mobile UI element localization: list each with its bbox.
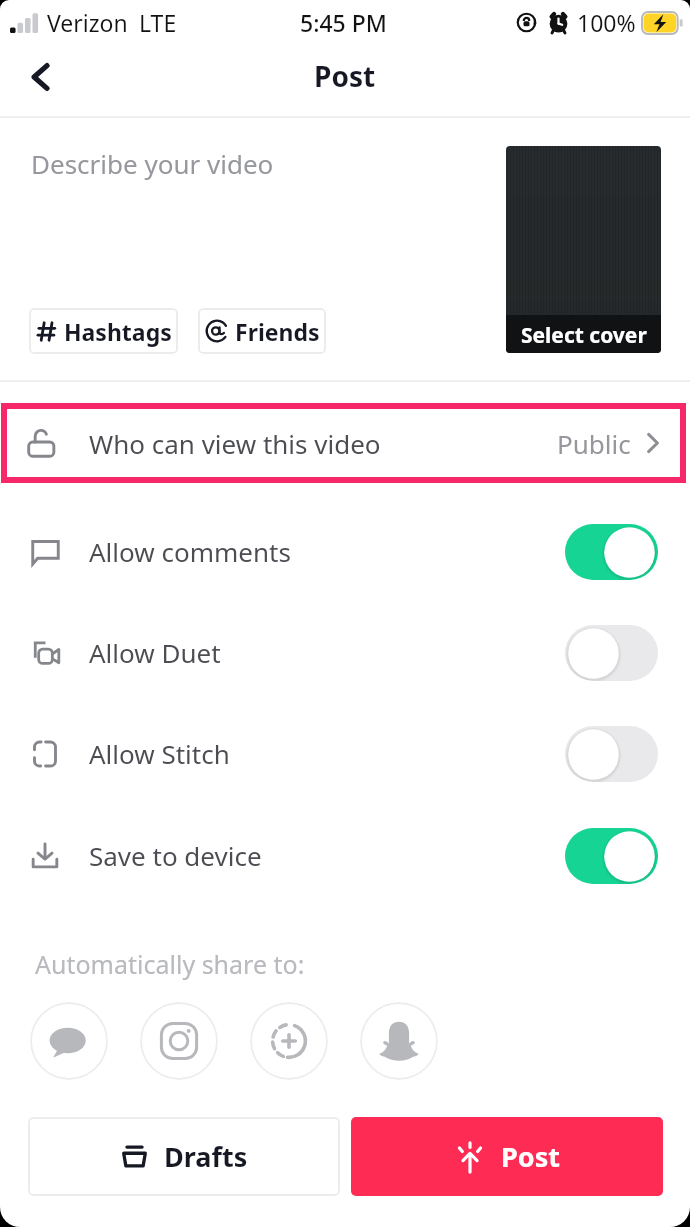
- staticText: 100%: [577, 7, 636, 38]
- button[interactable]: Allow Duet: [565, 625, 658, 681]
- button[interactable]: Who can view this video: [1, 403, 686, 483]
- button[interactable]: Save to device: [565, 828, 658, 884]
- button[interactable]: Select cover: [506, 146, 661, 353]
- button[interactable]: Allow comments: [0, 501, 690, 602]
- staticText: Verizon: [47, 7, 128, 38]
- button[interactable]: Share to Instagram: [140, 1002, 218, 1080]
- staticText: Post: [314, 57, 376, 95]
- staticText: Select cover: [521, 321, 647, 350]
- staticText: Allow comments: [89, 534, 291, 569]
- staticText: Friends: [235, 316, 320, 347]
- staticText: Automatically share to:: [35, 947, 305, 981]
- button[interactable]: Share to messages: [30, 1002, 108, 1080]
- staticText: LTE: [139, 7, 177, 38]
- staticText: 5:45 PM: [300, 7, 387, 38]
- button[interactable]: Share to Snapchat: [360, 1002, 438, 1080]
- button[interactable]: Allow Stitch: [565, 726, 658, 782]
- staticText: Describe your video: [31, 146, 274, 181]
- button[interactable]: Allow Duet: [0, 602, 690, 703]
- button[interactable]: Back: [10, 46, 72, 108]
- button[interactable]: Share to story: [250, 1002, 328, 1080]
- button[interactable]: Hashtags: [29, 308, 178, 354]
- staticText: Drafts: [164, 1138, 248, 1175]
- button[interactable]: Drafts: [28, 1117, 340, 1196]
- staticText: Public: [557, 426, 631, 461]
- button[interactable]: Post: [351, 1117, 663, 1196]
- button[interactable]: Allow comments: [565, 524, 658, 580]
- button[interactable]: Allow Stitch: [0, 703, 690, 804]
- button[interactable]: Friends: [198, 308, 326, 354]
- staticText: Allow Stitch: [89, 736, 230, 771]
- staticText: Post: [501, 1138, 560, 1175]
- staticText: Hashtags: [64, 316, 172, 347]
- staticText: Who can view this video: [89, 426, 381, 461]
- staticText: Save to device: [89, 838, 262, 873]
- button[interactable]: Save to device: [0, 805, 690, 906]
- staticText: Allow Duet: [89, 635, 221, 670]
